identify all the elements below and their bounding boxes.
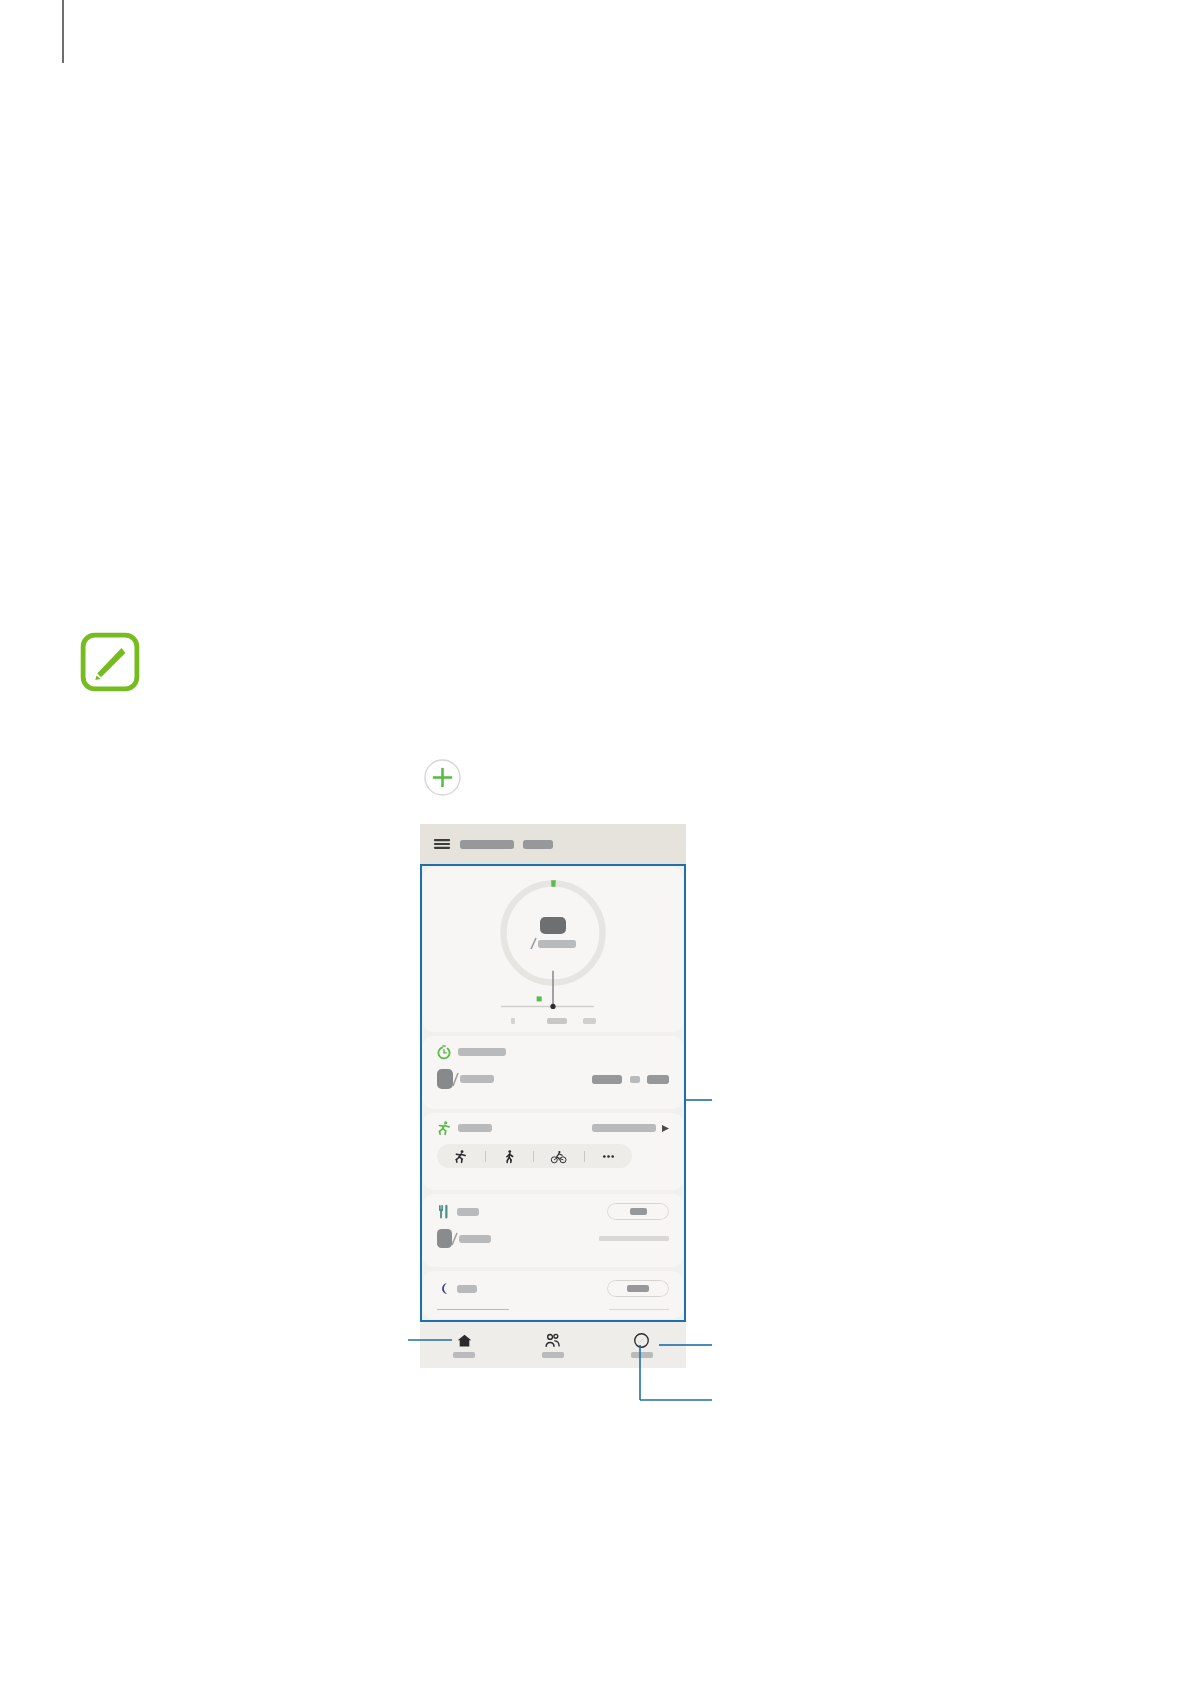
button[interactable]: Cycling [551, 1149, 566, 1164]
button[interactable]: Running [423, 1113, 683, 1190]
button[interactable]: Home [420, 1322, 508, 1368]
button[interactable]: Discover [597, 1322, 686, 1368]
button[interactable] [423, 1036, 683, 1109]
button[interactable] [423, 1271, 683, 1319]
button[interactable]: Menu [434, 836, 450, 852]
button[interactable]: More [602, 1150, 615, 1163]
button[interactable]: Together [508, 1322, 597, 1368]
button[interactable]: Walking [503, 1150, 516, 1163]
button[interactable]: Add [424, 759, 461, 796]
button[interactable] [423, 867, 683, 1032]
button[interactable]: Running [454, 1150, 467, 1163]
button[interactable] [423, 1194, 683, 1267]
button[interactable] [607, 1203, 669, 1220]
button[interactable] [607, 1280, 669, 1297]
